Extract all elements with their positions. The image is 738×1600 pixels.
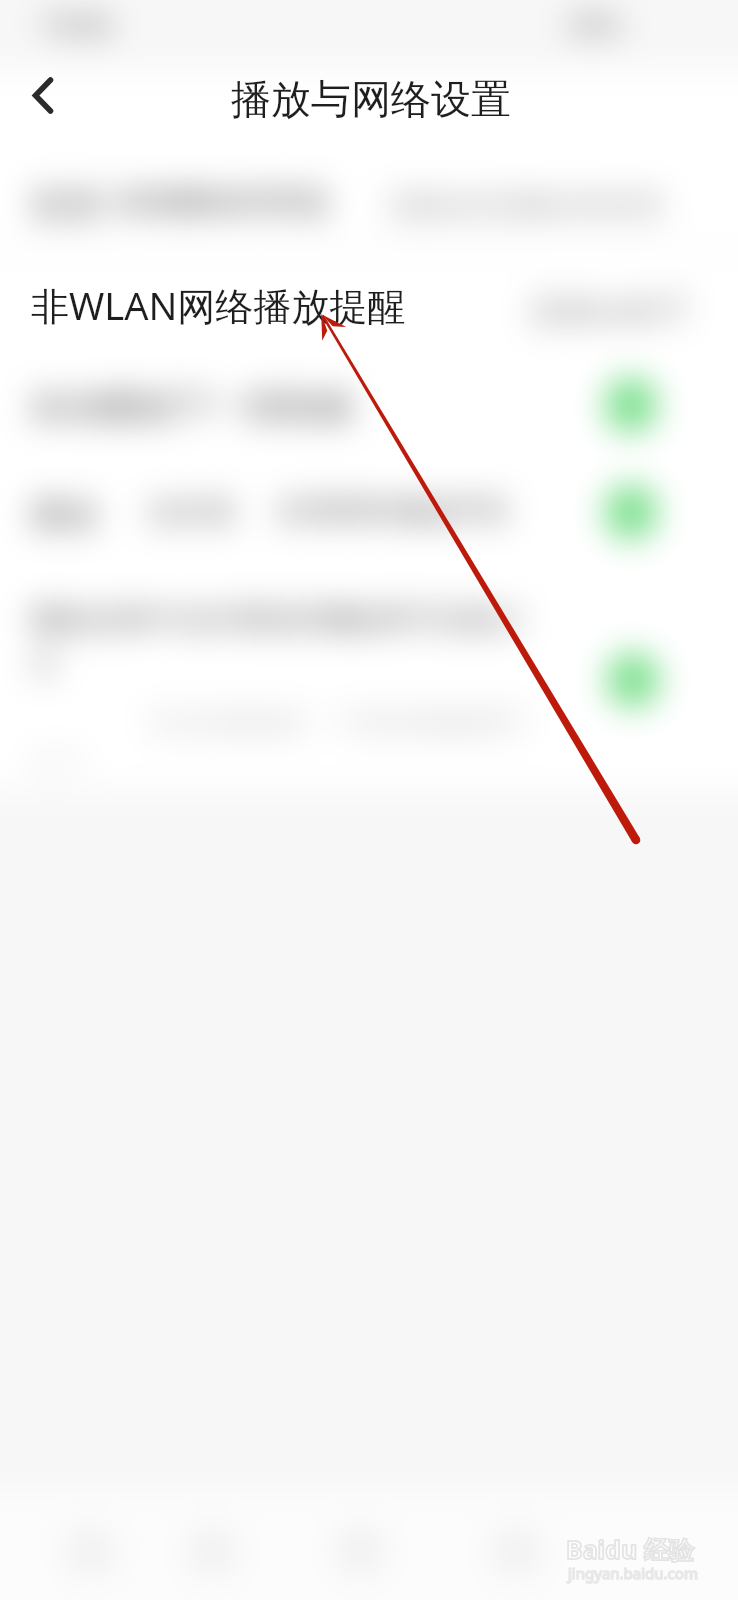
staticText: 允许其: [146, 493, 236, 531]
staticText: jingyan.baidu.com: [568, 1563, 698, 1583]
staticText: 播放: [30, 493, 98, 536]
button[interactable]: Back: [8, 63, 74, 129]
staticText: 自动播放下一首歌曲: [30, 384, 354, 429]
staticText: 标准音质: [540, 186, 664, 225]
staticText: 应用同时播放声音: [278, 493, 510, 530]
button[interactable]: Toggle: [605, 484, 657, 540]
staticText: 键调节音量大: [345, 601, 525, 639]
staticText: 在线播放音质选: [112, 182, 329, 221]
staticText: 流畅省流量: [386, 186, 541, 225]
staticText: 10:46: [42, 6, 112, 43]
button[interactable]: Toggle: [605, 377, 657, 433]
staticText: 音质: [30, 182, 102, 227]
staticText: 非WLAN网络播放提醒: [31, 279, 406, 331]
staticText: 播放过程中允许系统音量: [30, 601, 349, 638]
staticText: 46%: [568, 6, 622, 43]
staticText: Baidu 经验: [566, 1532, 694, 1566]
button[interactable]: Toggle: [607, 652, 659, 708]
staticText: 播放与网络设置: [231, 74, 511, 124]
staticText: 音: [30, 645, 60, 683]
staticText: 仅WLAN下: [530, 288, 691, 333]
